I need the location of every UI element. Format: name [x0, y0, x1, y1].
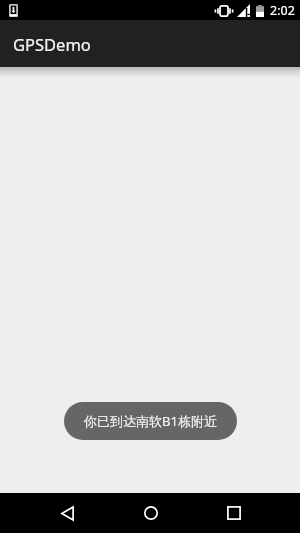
- staticText: 你已到达南软B1栋附近: [84, 412, 217, 430]
- button[interactable]: Recent apps: [192, 493, 275, 533]
- button[interactable]: 你已到达南软B1栋附近: [64, 402, 237, 440]
- staticText: GPSDemo: [13, 33, 91, 55]
- staticText: 2:02: [270, 2, 295, 19]
- button[interactable]: Home: [109, 493, 192, 533]
- button[interactable]: Back: [26, 493, 109, 533]
